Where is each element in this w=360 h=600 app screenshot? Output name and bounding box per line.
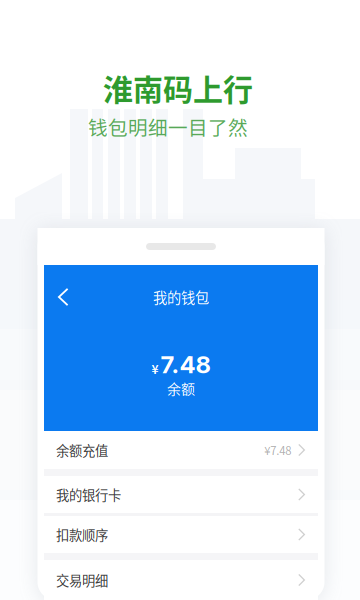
staticText: 我的钱包 <box>153 287 209 307</box>
staticText: 淮南码上行 <box>103 66 253 109</box>
staticText: 我的银行卡 <box>56 485 121 504</box>
staticText: 7.48 <box>160 350 210 379</box>
button[interactable]: 余额充值 <box>44 431 318 469</box>
button[interactable]: 扣款顺序 <box>44 516 318 553</box>
staticText: 交易明细 <box>56 570 108 590</box>
button[interactable]: 交易明细 <box>44 560 318 600</box>
staticText: ¥7.48 <box>264 442 291 458</box>
staticText: 余额 <box>167 378 195 398</box>
staticText: ¥ <box>151 360 158 378</box>
button[interactable]: Back <box>58 285 86 309</box>
button[interactable]: 我的银行卡 <box>44 476 318 513</box>
staticText: 钱包明细一目了然 <box>88 112 248 141</box>
staticText: 余额充值 <box>56 440 108 460</box>
staticText: 扣款顺序 <box>56 525 108 544</box>
